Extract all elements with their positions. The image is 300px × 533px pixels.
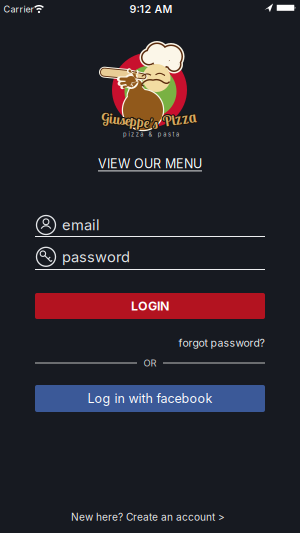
button[interactable]: forgot password?: [178, 337, 264, 349]
staticText: Pizza: [163, 108, 197, 127]
staticText: Pizza: [162, 108, 196, 127]
staticText: OR: [143, 357, 156, 369]
staticText: Pizza: [162, 110, 196, 129]
staticText: Log in with facebook: [87, 391, 212, 406]
staticText: Pizza: [162, 110, 196, 129]
button[interactable]: VIEW OUR MENU: [98, 156, 202, 171]
button[interactable]: Log in with facebook: [35, 385, 265, 412]
staticText: 9:12 AM: [129, 2, 172, 15]
staticText: Giuseppe's: [102, 112, 160, 130]
staticText: Giuseppe's: [101, 111, 159, 128]
staticText: Giuseppe's: [101, 112, 159, 129]
button[interactable]: LOGIN: [35, 293, 265, 319]
staticText: password: [62, 248, 130, 266]
staticText: Pizza: [163, 110, 197, 129]
staticText: Giuseppe's: [102, 112, 160, 129]
staticText: Giuseppe's: [100, 111, 158, 129]
staticText: Giuseppe's: [101, 113, 159, 130]
staticText: Pizza: [161, 109, 195, 128]
staticText: Giuseppe's: [102, 111, 160, 129]
staticText: forgot password?: [178, 337, 264, 349]
staticText: New here? Create an account >: [71, 511, 225, 523]
staticText: LOGIN: [131, 298, 169, 313]
staticText: Pizza: [163, 109, 197, 128]
staticText: email: [62, 216, 100, 234]
staticText: pizza & pasta: [123, 131, 179, 138]
staticText: Carrier: [3, 4, 33, 15]
staticText: Pizza: [162, 109, 196, 128]
staticText: VIEW OUR MENU: [98, 156, 202, 171]
staticText: Pizza: [162, 108, 196, 127]
staticText: Giuseppe's: [100, 112, 158, 130]
staticText: Giuseppe's: [100, 112, 158, 129]
button[interactable]: New here? Create an account >: [71, 511, 225, 523]
